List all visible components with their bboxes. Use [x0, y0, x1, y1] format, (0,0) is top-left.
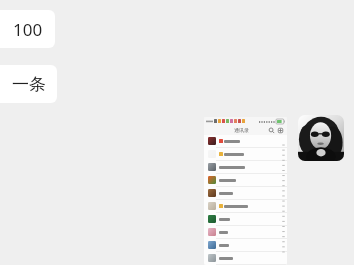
button[interactable]: [204, 135, 287, 147]
button[interactable]: [204, 213, 287, 225]
button[interactable]: Search: [268, 127, 275, 134]
button[interactable]: [204, 226, 287, 238]
button[interactable]: [204, 200, 287, 212]
button[interactable]: [204, 252, 287, 264]
button[interactable]: [204, 187, 287, 199]
button[interactable]: Profile photo: [298, 115, 344, 161]
staticText: 通讯录: [234, 127, 249, 133]
button[interactable]: 100: [0, 10, 55, 48]
button[interactable]: [204, 239, 287, 251]
button[interactable]: [204, 161, 287, 173]
button[interactable]: Add contact: [277, 127, 284, 134]
button[interactable]: 一条: [0, 65, 57, 103]
button[interactable]: 通讯录: [204, 117, 287, 265]
button[interactable]: [204, 174, 287, 186]
button[interactable]: [204, 148, 287, 160]
staticText: 一条: [12, 74, 46, 95]
staticText: 100: [13, 18, 43, 41]
